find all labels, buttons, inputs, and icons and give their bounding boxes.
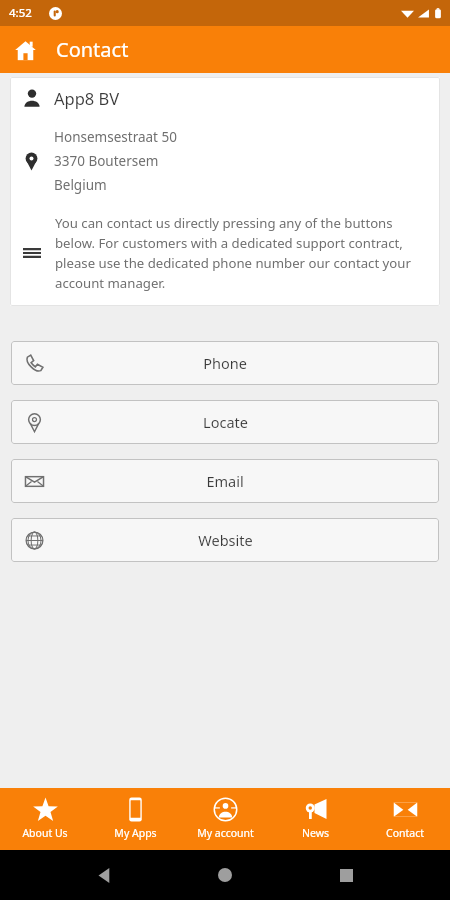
staticText: Contact	[56, 36, 129, 63]
button[interactable]: Home	[6, 31, 44, 69]
button[interactable]: Recent apps	[329, 858, 363, 892]
button[interactable]: Contact	[360, 788, 450, 850]
button[interactable]: Locate	[11, 400, 439, 444]
button[interactable]: My Apps	[90, 788, 180, 850]
button[interactable]: Back	[87, 858, 121, 892]
button[interactable]: News	[270, 788, 360, 850]
staticText: Website	[198, 530, 253, 550]
staticText: My Apps	[114, 826, 157, 840]
staticText: Phone	[203, 353, 247, 373]
staticText: App8 BV	[54, 87, 120, 109]
staticText: Contact	[386, 826, 424, 840]
staticText: Email	[206, 471, 244, 491]
staticText: News	[302, 826, 329, 840]
staticText: Belgium	[54, 176, 107, 194]
staticText: You can contact us directly pressing any…	[55, 214, 430, 292]
button[interactable]: My account	[180, 788, 270, 850]
button[interactable]: Website	[11, 518, 439, 562]
staticText: About Us	[22, 826, 68, 840]
staticText: 4:52	[9, 5, 32, 21]
button[interactable]: Phone	[11, 341, 439, 385]
staticText: Honsemsestraat 50	[54, 128, 177, 146]
staticText: 3370 Boutersem	[54, 152, 159, 170]
button[interactable]: Email	[11, 459, 439, 503]
staticText: My account	[197, 826, 254, 840]
button[interactable]: About Us	[0, 788, 90, 850]
button[interactable]: Home	[208, 858, 242, 892]
staticText: Locate	[203, 412, 248, 432]
